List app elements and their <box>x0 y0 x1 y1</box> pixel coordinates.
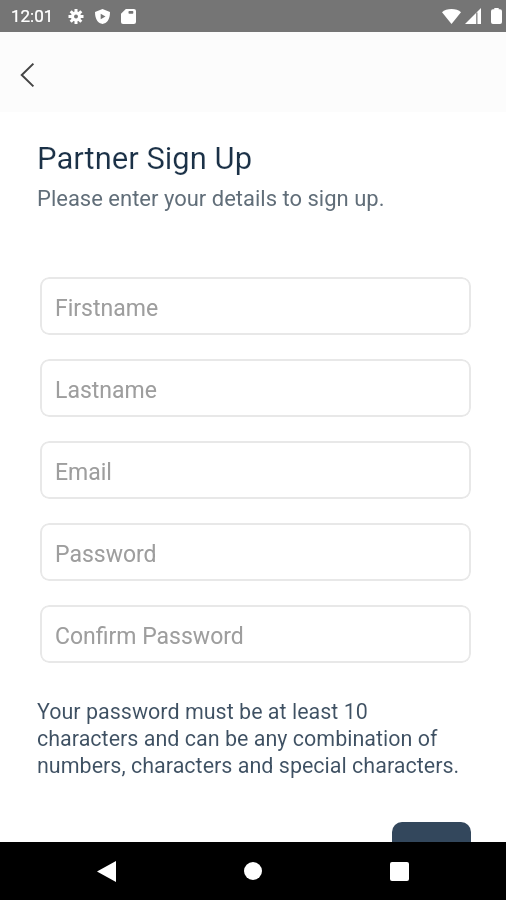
button[interactable]: Firstname <box>40 277 471 335</box>
button[interactable]: Email <box>40 441 471 499</box>
button[interactable]: Back <box>4 51 52 99</box>
staticText: Your password must be at least 10 charac… <box>37 699 460 779</box>
staticText: Firstname <box>55 295 159 322</box>
button[interactable]: Home <box>229 847 277 895</box>
button[interactable]: Back <box>82 847 130 895</box>
button[interactable]: Password <box>40 523 471 581</box>
staticText: Confirm Password <box>55 623 244 650</box>
staticText: Email <box>55 459 112 486</box>
button[interactable]: Lastname <box>40 359 471 417</box>
button[interactable]: Recents <box>375 847 423 895</box>
staticText: 12:01 <box>11 6 54 26</box>
staticText: Password <box>55 541 157 568</box>
button[interactable]: Confirm Password <box>40 605 471 663</box>
staticText: Please enter your details to sign up. <box>37 186 385 212</box>
staticText: Partner Sign Up <box>37 140 253 176</box>
staticText: Lastname <box>55 377 157 404</box>
button[interactable]: Sign Up <box>392 822 471 842</box>
